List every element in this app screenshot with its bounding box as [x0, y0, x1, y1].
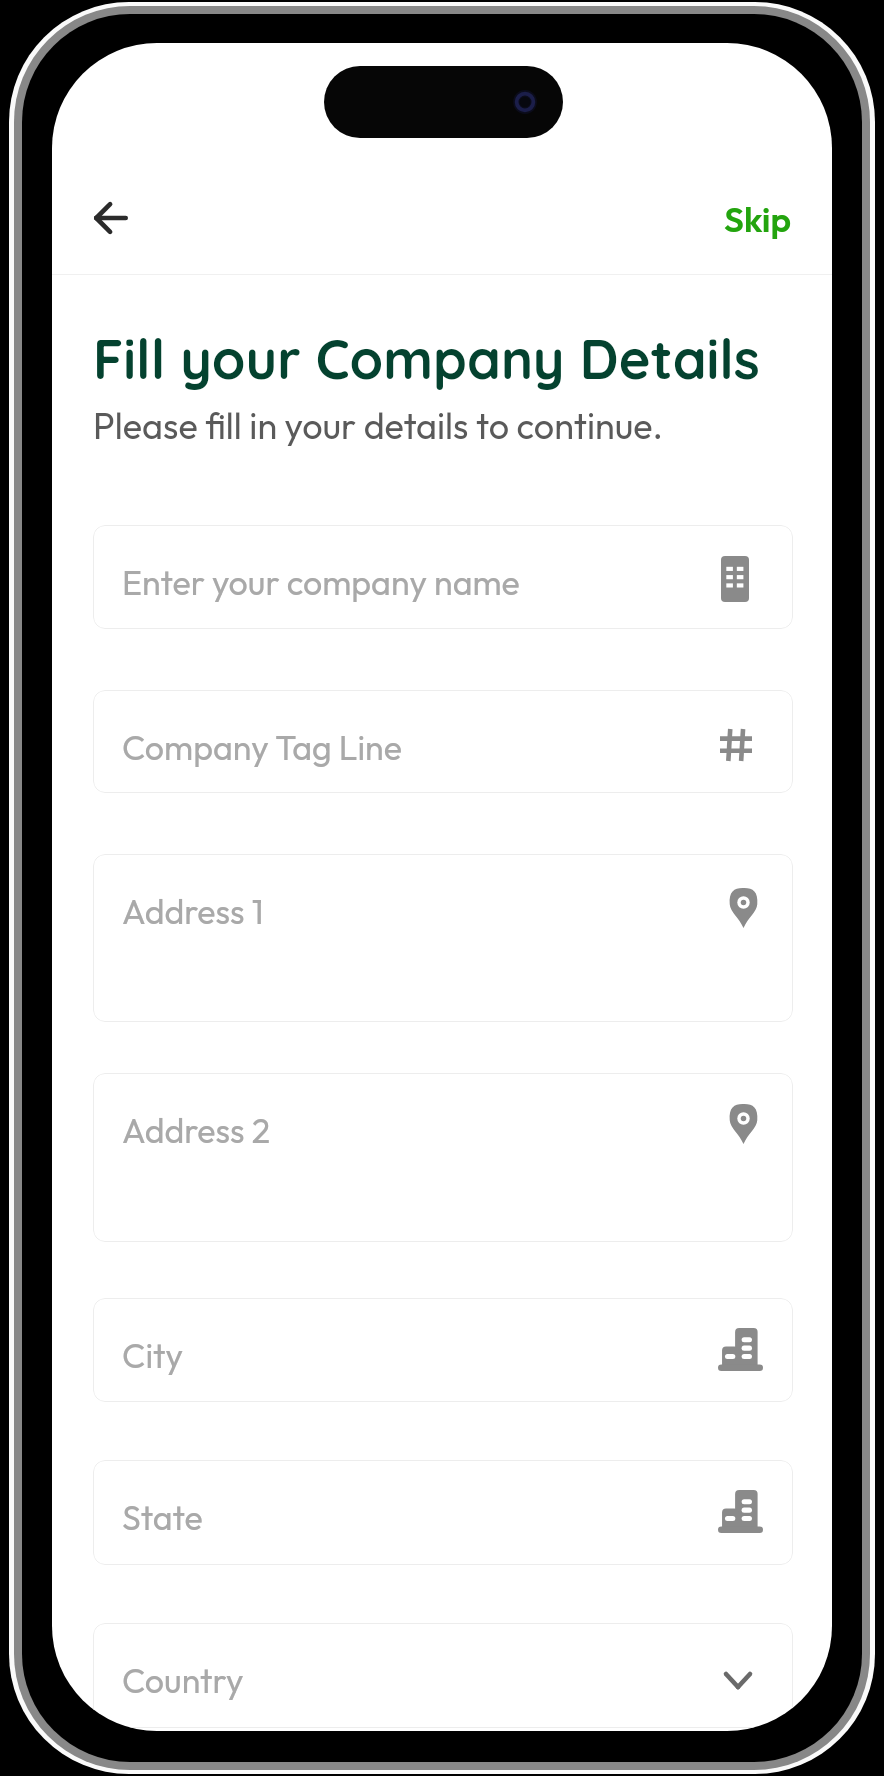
staticText: Company Tag Line	[122, 726, 402, 769]
button[interactable]: Enter your company name	[93, 525, 793, 629]
button[interactable]: State	[93, 1460, 793, 1565]
staticText: State	[122, 1496, 203, 1539]
staticText: Address 2	[122, 1109, 271, 1152]
button[interactable]: Skip	[710, 185, 806, 253]
button[interactable]: City	[93, 1298, 793, 1402]
staticText: City	[122, 1334, 183, 1377]
button[interactable]: Country	[93, 1623, 793, 1728]
staticText: Country	[122, 1659, 244, 1702]
staticText: Skip	[724, 197, 792, 241]
button[interactable]: Company Tag Line	[93, 690, 793, 793]
staticText: Fill your Company Details	[93, 325, 760, 393]
button[interactable]: Address 1	[93, 854, 793, 1022]
staticText: Enter your company name	[122, 561, 520, 604]
staticText: Please fill in your details to continue.	[93, 403, 664, 448]
button[interactable]: Back	[74, 181, 148, 255]
staticText: Address 1	[122, 890, 264, 933]
button[interactable]: Address 2	[93, 1073, 793, 1242]
